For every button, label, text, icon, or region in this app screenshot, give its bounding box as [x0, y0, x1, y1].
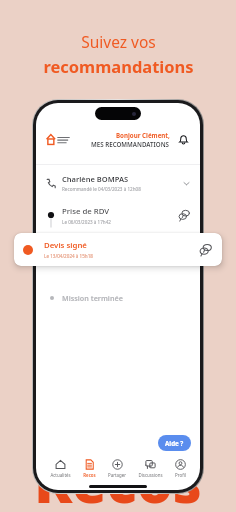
staticText: recommandations — [43, 55, 194, 77]
button[interactable]: Prise de RDV — [36, 203, 200, 227]
staticText: Le 13/04/2024 à 15h18 — [44, 253, 93, 259]
button[interactable]: Partager — [106, 458, 128, 479]
button[interactable]: Proposition — [36, 236, 200, 260]
staticText: Recos — [83, 472, 96, 478]
staticText: Suivez vos — [81, 31, 156, 52]
staticText: Le 06/03/2023 à 17h42 — [62, 219, 111, 225]
staticText: Partager — [108, 472, 126, 478]
button[interactable]: Recos — [81, 458, 98, 479]
staticText: Le 28/03/2023 à 9h04 — [62, 252, 109, 258]
button[interactable]: Actualités — [48, 458, 73, 479]
staticText: Proposition — [62, 239, 105, 250]
staticText: Charlène BOMPAS — [62, 174, 129, 184]
button[interactable]: Devis signé — [14, 233, 222, 266]
button[interactable]: Discussions — [136, 458, 165, 479]
staticText: Mission terminée — [62, 293, 123, 303]
staticText: Prise de RDV — [62, 206, 110, 217]
staticText: Aide ? — [165, 439, 184, 447]
staticText: Discussions — [138, 472, 163, 478]
button[interactable]: Aide ? — [158, 435, 191, 451]
button[interactable]: Profil — [173, 458, 188, 479]
button[interactable]: Notifications — [175, 131, 191, 147]
staticText: Actualités — [50, 472, 71, 478]
staticText: Recommandé le 04/03/2023 à 12h08 — [62, 186, 141, 192]
staticText: Profil — [175, 472, 186, 478]
staticText: Devis signé — [44, 240, 87, 251]
staticText: MES RECOMMANDATIONS — [91, 140, 170, 148]
staticText: Bonjour Clément, — [116, 131, 170, 139]
button[interactable]: Charlène BOMPAS — [36, 172, 200, 194]
staticText: Recos — [34, 443, 202, 512]
